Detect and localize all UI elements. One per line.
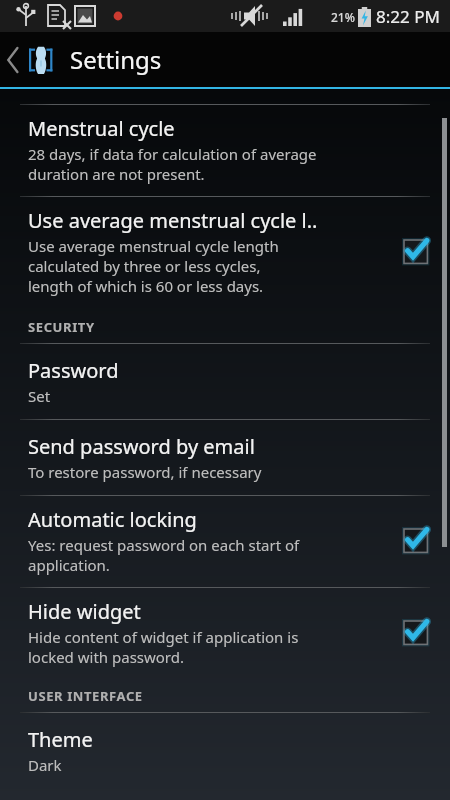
- button[interactable]: Menstrual cycle: [0, 105, 450, 196]
- staticText: SECURITY: [28, 318, 95, 336]
- staticText: Automatic locking: [28, 506, 197, 533]
- button[interactable]: Send password by email: [0, 420, 450, 495]
- staticText: To restore password, if necessary: [28, 462, 262, 482]
- staticText: 8:22 PM: [376, 5, 440, 28]
- staticText: Dark: [28, 755, 62, 775]
- staticText: USER INTERFACE: [28, 687, 143, 705]
- button[interactable]: Theme: [0, 713, 450, 788]
- staticText: 28 days, if data for calculation of aver…: [28, 144, 317, 184]
- button[interactable]: Hide widget: [0, 588, 450, 679]
- staticText: Hide widget: [28, 598, 141, 625]
- staticText: Set: [28, 386, 51, 406]
- staticText: Use average menstrual cycle l..: [28, 207, 318, 234]
- staticText: Menstrual cycle: [28, 115, 175, 142]
- button[interactable]: Back: [0, 32, 62, 87]
- staticText: Settings: [70, 43, 162, 76]
- button[interactable]: Hide widget checkbox: [394, 611, 438, 655]
- staticText: Send password by email: [28, 433, 255, 460]
- staticText: Hide content of widget if application is…: [28, 627, 299, 667]
- staticText: Password: [28, 357, 119, 384]
- staticText: Theme: [28, 726, 93, 753]
- staticText: 21%: [331, 9, 355, 25]
- button[interactable]: Use average menstrual cycle l.. checkbox: [394, 230, 438, 274]
- button[interactable]: Automatic locking: [0, 496, 450, 587]
- button[interactable]: Use average menstrual cycle l..: [0, 197, 450, 308]
- button[interactable]: Password: [0, 344, 450, 419]
- staticText: Yes: request password on each start of a…: [28, 535, 300, 575]
- button[interactable]: Automatic locking checkbox: [394, 519, 438, 563]
- staticText: Use average menstrual cycle length calcu…: [28, 236, 279, 296]
